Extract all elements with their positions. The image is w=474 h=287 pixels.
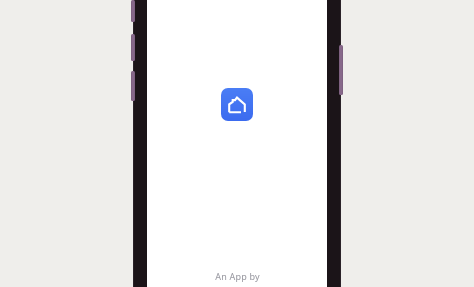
button[interactable]: Silent switch [131,0,135,22]
button[interactable]: Volume down [131,71,135,101]
button[interactable]: App icon [221,88,253,121]
button[interactable]: Power [339,45,343,95]
button[interactable]: Volume up [131,34,135,61]
staticText: An App by [215,270,260,282]
